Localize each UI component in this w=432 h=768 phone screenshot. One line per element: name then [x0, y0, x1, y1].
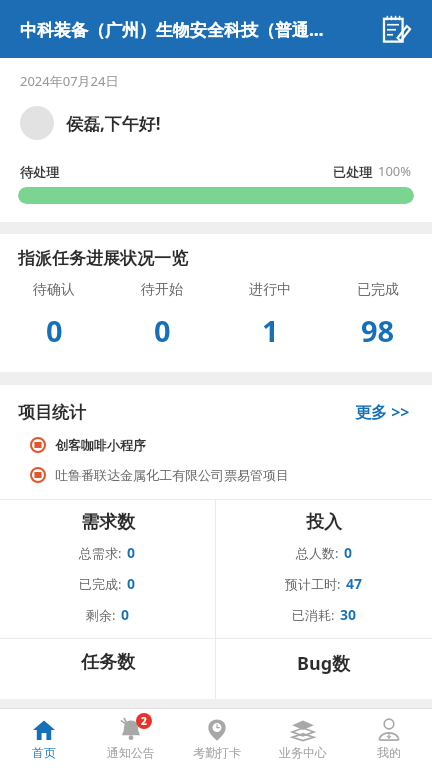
staticText: 更多 >>: [355, 401, 410, 423]
staticText: 指派任务进展状况一览: [18, 248, 188, 269]
staticText: 待开始: [141, 281, 183, 299]
button[interactable]: 待开始: [108, 281, 216, 350]
staticText: 0: [154, 311, 171, 350]
staticText: 进行中: [249, 281, 291, 299]
staticText: 0: [46, 311, 63, 350]
staticText: 待处理: [20, 164, 59, 180]
staticText: 已消耗:: [292, 606, 335, 624]
staticText: 业务中心: [279, 745, 327, 760]
staticText: 0: [127, 543, 136, 562]
button[interactable]: 编辑: [374, 7, 418, 51]
button[interactable]: 2: [87, 709, 174, 768]
staticText: 首页: [32, 745, 56, 760]
button[interactable]: 更多 >>: [351, 397, 414, 427]
button[interactable]: 业务中心: [260, 709, 346, 768]
staticText: 已处理: [333, 164, 372, 180]
button[interactable]: 我的: [346, 709, 432, 768]
button[interactable]: 进行中: [216, 281, 324, 350]
staticText: 0: [344, 543, 353, 562]
staticText: Bug数: [297, 651, 351, 676]
staticText: 吐鲁番联达金属化工有限公司票易管项目: [55, 467, 289, 483]
staticText: 总人数:: [296, 544, 339, 562]
staticText: 待确认: [33, 281, 75, 299]
staticText: 1: [262, 311, 279, 350]
staticText: 我的: [377, 745, 401, 760]
button[interactable]: 首页: [0, 709, 87, 768]
staticText: 预计工时:: [285, 575, 341, 593]
staticText: 剩余:: [86, 606, 116, 624]
staticText: 侯磊,下午好!: [66, 112, 161, 135]
button[interactable]: 待确认: [0, 281, 108, 350]
button[interactable]: 吐鲁番联达金属化工有限公司票易管项目: [0, 467, 432, 483]
staticText: 47: [346, 574, 363, 593]
staticText: 100%: [378, 162, 412, 180]
staticText: 98: [361, 311, 395, 350]
button[interactable]: 已完成: [324, 281, 432, 350]
staticText: 考勤打卡: [193, 745, 241, 760]
staticText: 已完成: [357, 281, 399, 299]
button[interactable]: 考勤打卡: [174, 709, 260, 768]
staticText: 项目统计: [18, 402, 86, 423]
staticText: 已完成:: [79, 575, 122, 593]
staticText: 需求数: [81, 511, 135, 534]
staticText: 任务数: [81, 651, 135, 674]
staticText: 中科装备（广州）生物安全科技（普通…: [20, 18, 324, 41]
staticText: 总需求:: [79, 544, 122, 562]
staticText: 0: [121, 605, 130, 624]
staticText: 2: [141, 714, 147, 728]
staticText: 2024年07月24日: [20, 72, 119, 90]
staticText: 通知公告: [107, 745, 155, 760]
staticText: 投入: [306, 511, 342, 534]
staticText: 30: [340, 605, 357, 624]
staticText: 创客咖啡小程序: [55, 437, 146, 453]
button[interactable]: 创客咖啡小程序: [0, 437, 432, 453]
staticText: 0: [127, 574, 136, 593]
